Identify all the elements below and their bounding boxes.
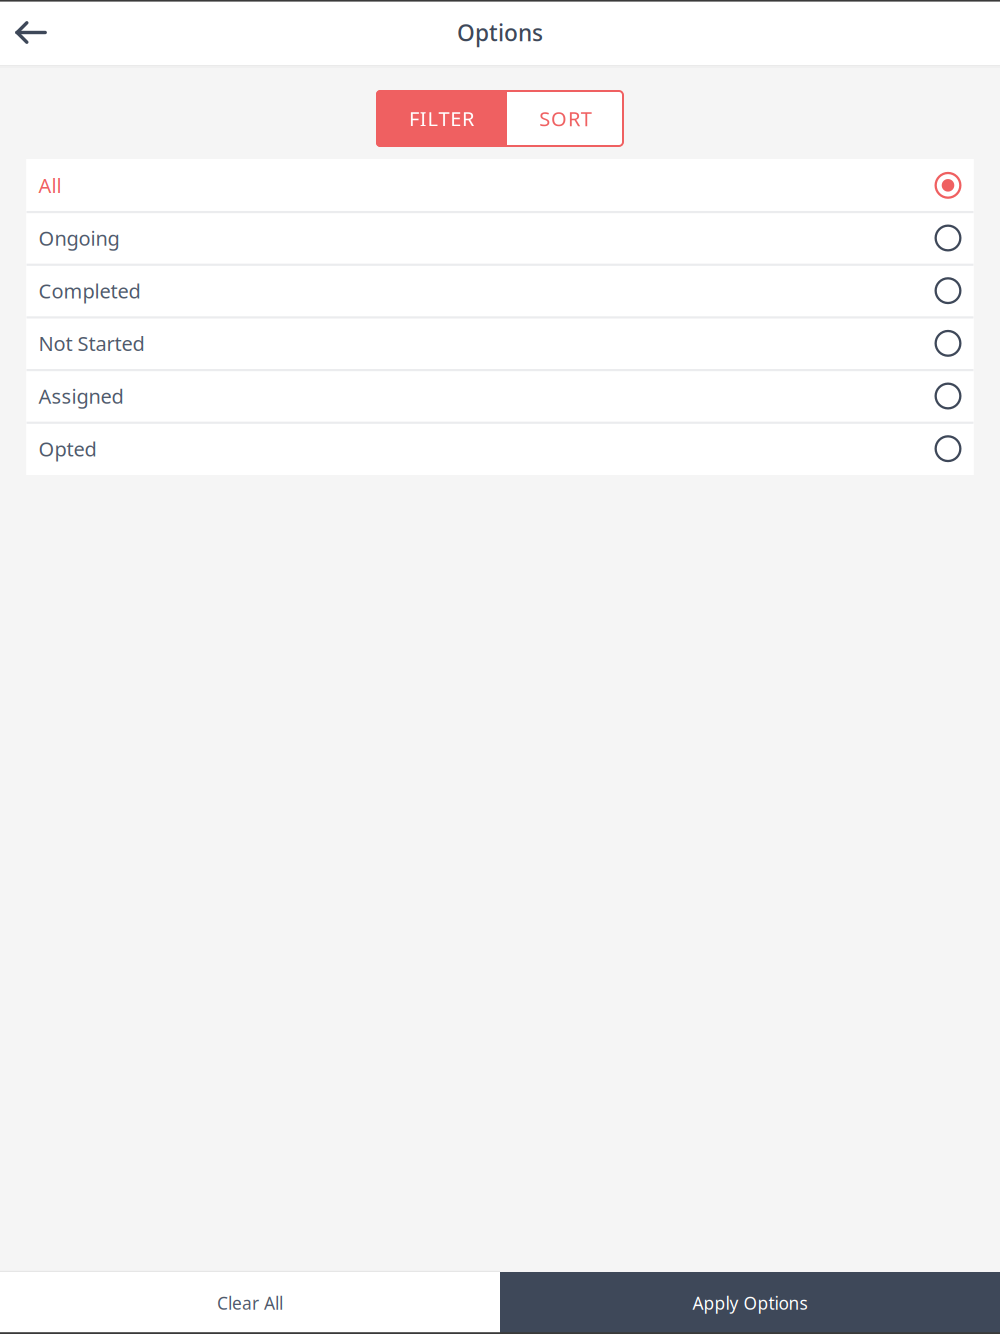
button[interactable]: Opted <box>26 422 973 475</box>
button[interactable]: Assigned <box>26 370 973 422</box>
staticText: Options <box>457 17 543 47</box>
staticText: All <box>38 172 61 199</box>
button[interactable]: Back <box>0 0 62 65</box>
staticText: SORT <box>539 105 592 132</box>
button[interactable]: Apply Options <box>500 1272 1000 1334</box>
staticText: Not Started <box>38 330 144 357</box>
button[interactable]: Clear All <box>0 1272 500 1334</box>
button[interactable]: Not Started <box>26 317 973 370</box>
staticText: FILTER <box>409 105 474 132</box>
button[interactable]: All <box>26 159 973 212</box>
staticText: Assigned <box>38 383 123 409</box>
button[interactable]: Ongoing <box>26 212 973 264</box>
button[interactable]: Completed <box>26 264 973 317</box>
staticText: Completed <box>38 277 140 304</box>
button[interactable]: SORT <box>507 90 624 147</box>
staticText: Opted <box>38 435 96 462</box>
staticText: Ongoing <box>38 225 119 251</box>
button[interactable]: FILTER <box>376 90 507 147</box>
staticText: Apply Options <box>692 1291 807 1314</box>
staticText: Clear All <box>217 1291 283 1314</box>
